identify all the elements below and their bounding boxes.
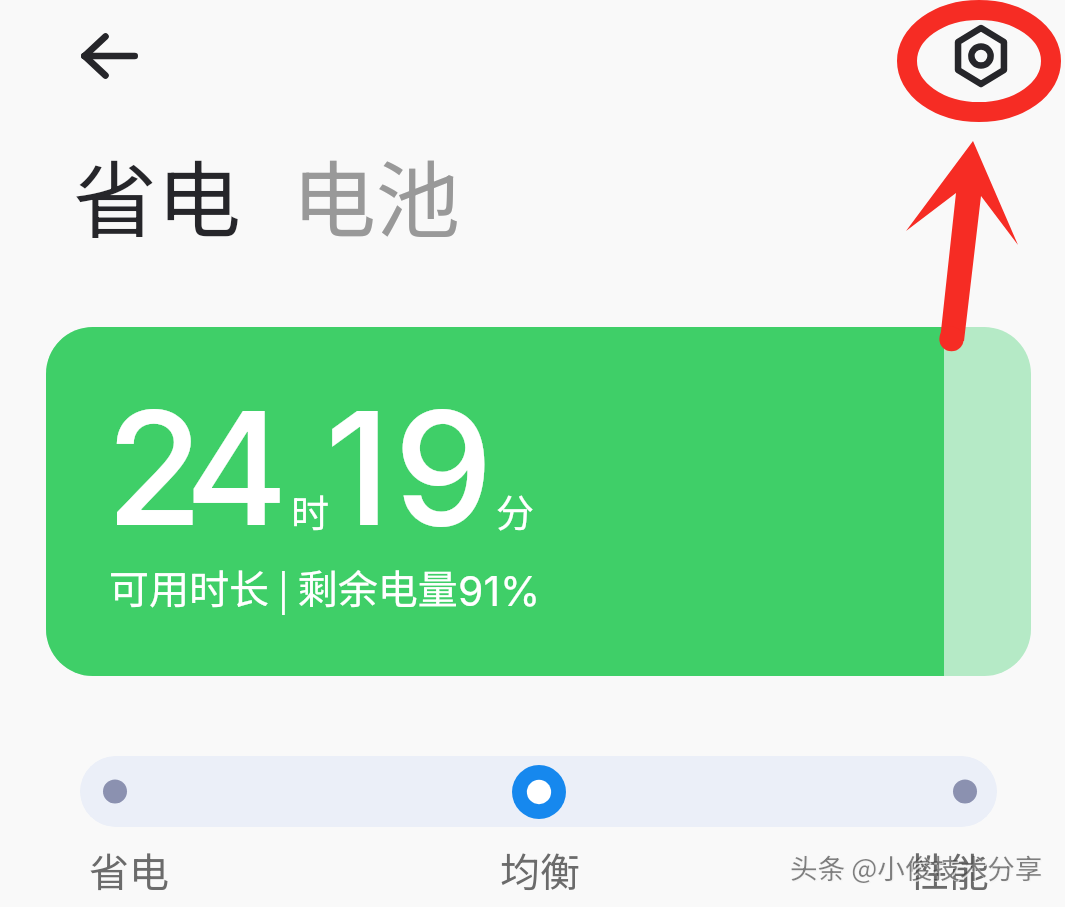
button[interactable]: 性能 bbox=[909, 841, 989, 899]
button[interactable]: 电池 bbox=[292, 134, 461, 256]
staticText: 可用时长 | 剩余电量 bbox=[109, 558, 458, 616]
button[interactable]: 省电 bbox=[89, 841, 169, 899]
staticText: 4 bbox=[185, 373, 289, 563]
staticText: 头条 @小俊技术分享 bbox=[791, 848, 1044, 888]
button[interactable]: 省电 bbox=[73, 134, 242, 256]
button[interactable]: Back bbox=[56, 10, 162, 100]
button[interactable]: Balanced mode bbox=[512, 765, 566, 819]
button[interactable]: Settings bbox=[936, 11, 1026, 101]
staticText: 头条 @小俊技术分享 bbox=[790, 847, 1043, 887]
button[interactable] bbox=[80, 756, 997, 827]
staticText: 91% bbox=[458, 566, 541, 616]
staticText: 分 bbox=[496, 483, 535, 538]
button[interactable]: 均衡 bbox=[500, 841, 580, 899]
staticText: 2 bbox=[106, 373, 203, 563]
staticText: 9 bbox=[394, 373, 493, 563]
staticText: 时 bbox=[291, 483, 330, 538]
staticText: 1 bbox=[325, 373, 391, 563]
button[interactable] bbox=[46, 327, 1031, 676]
